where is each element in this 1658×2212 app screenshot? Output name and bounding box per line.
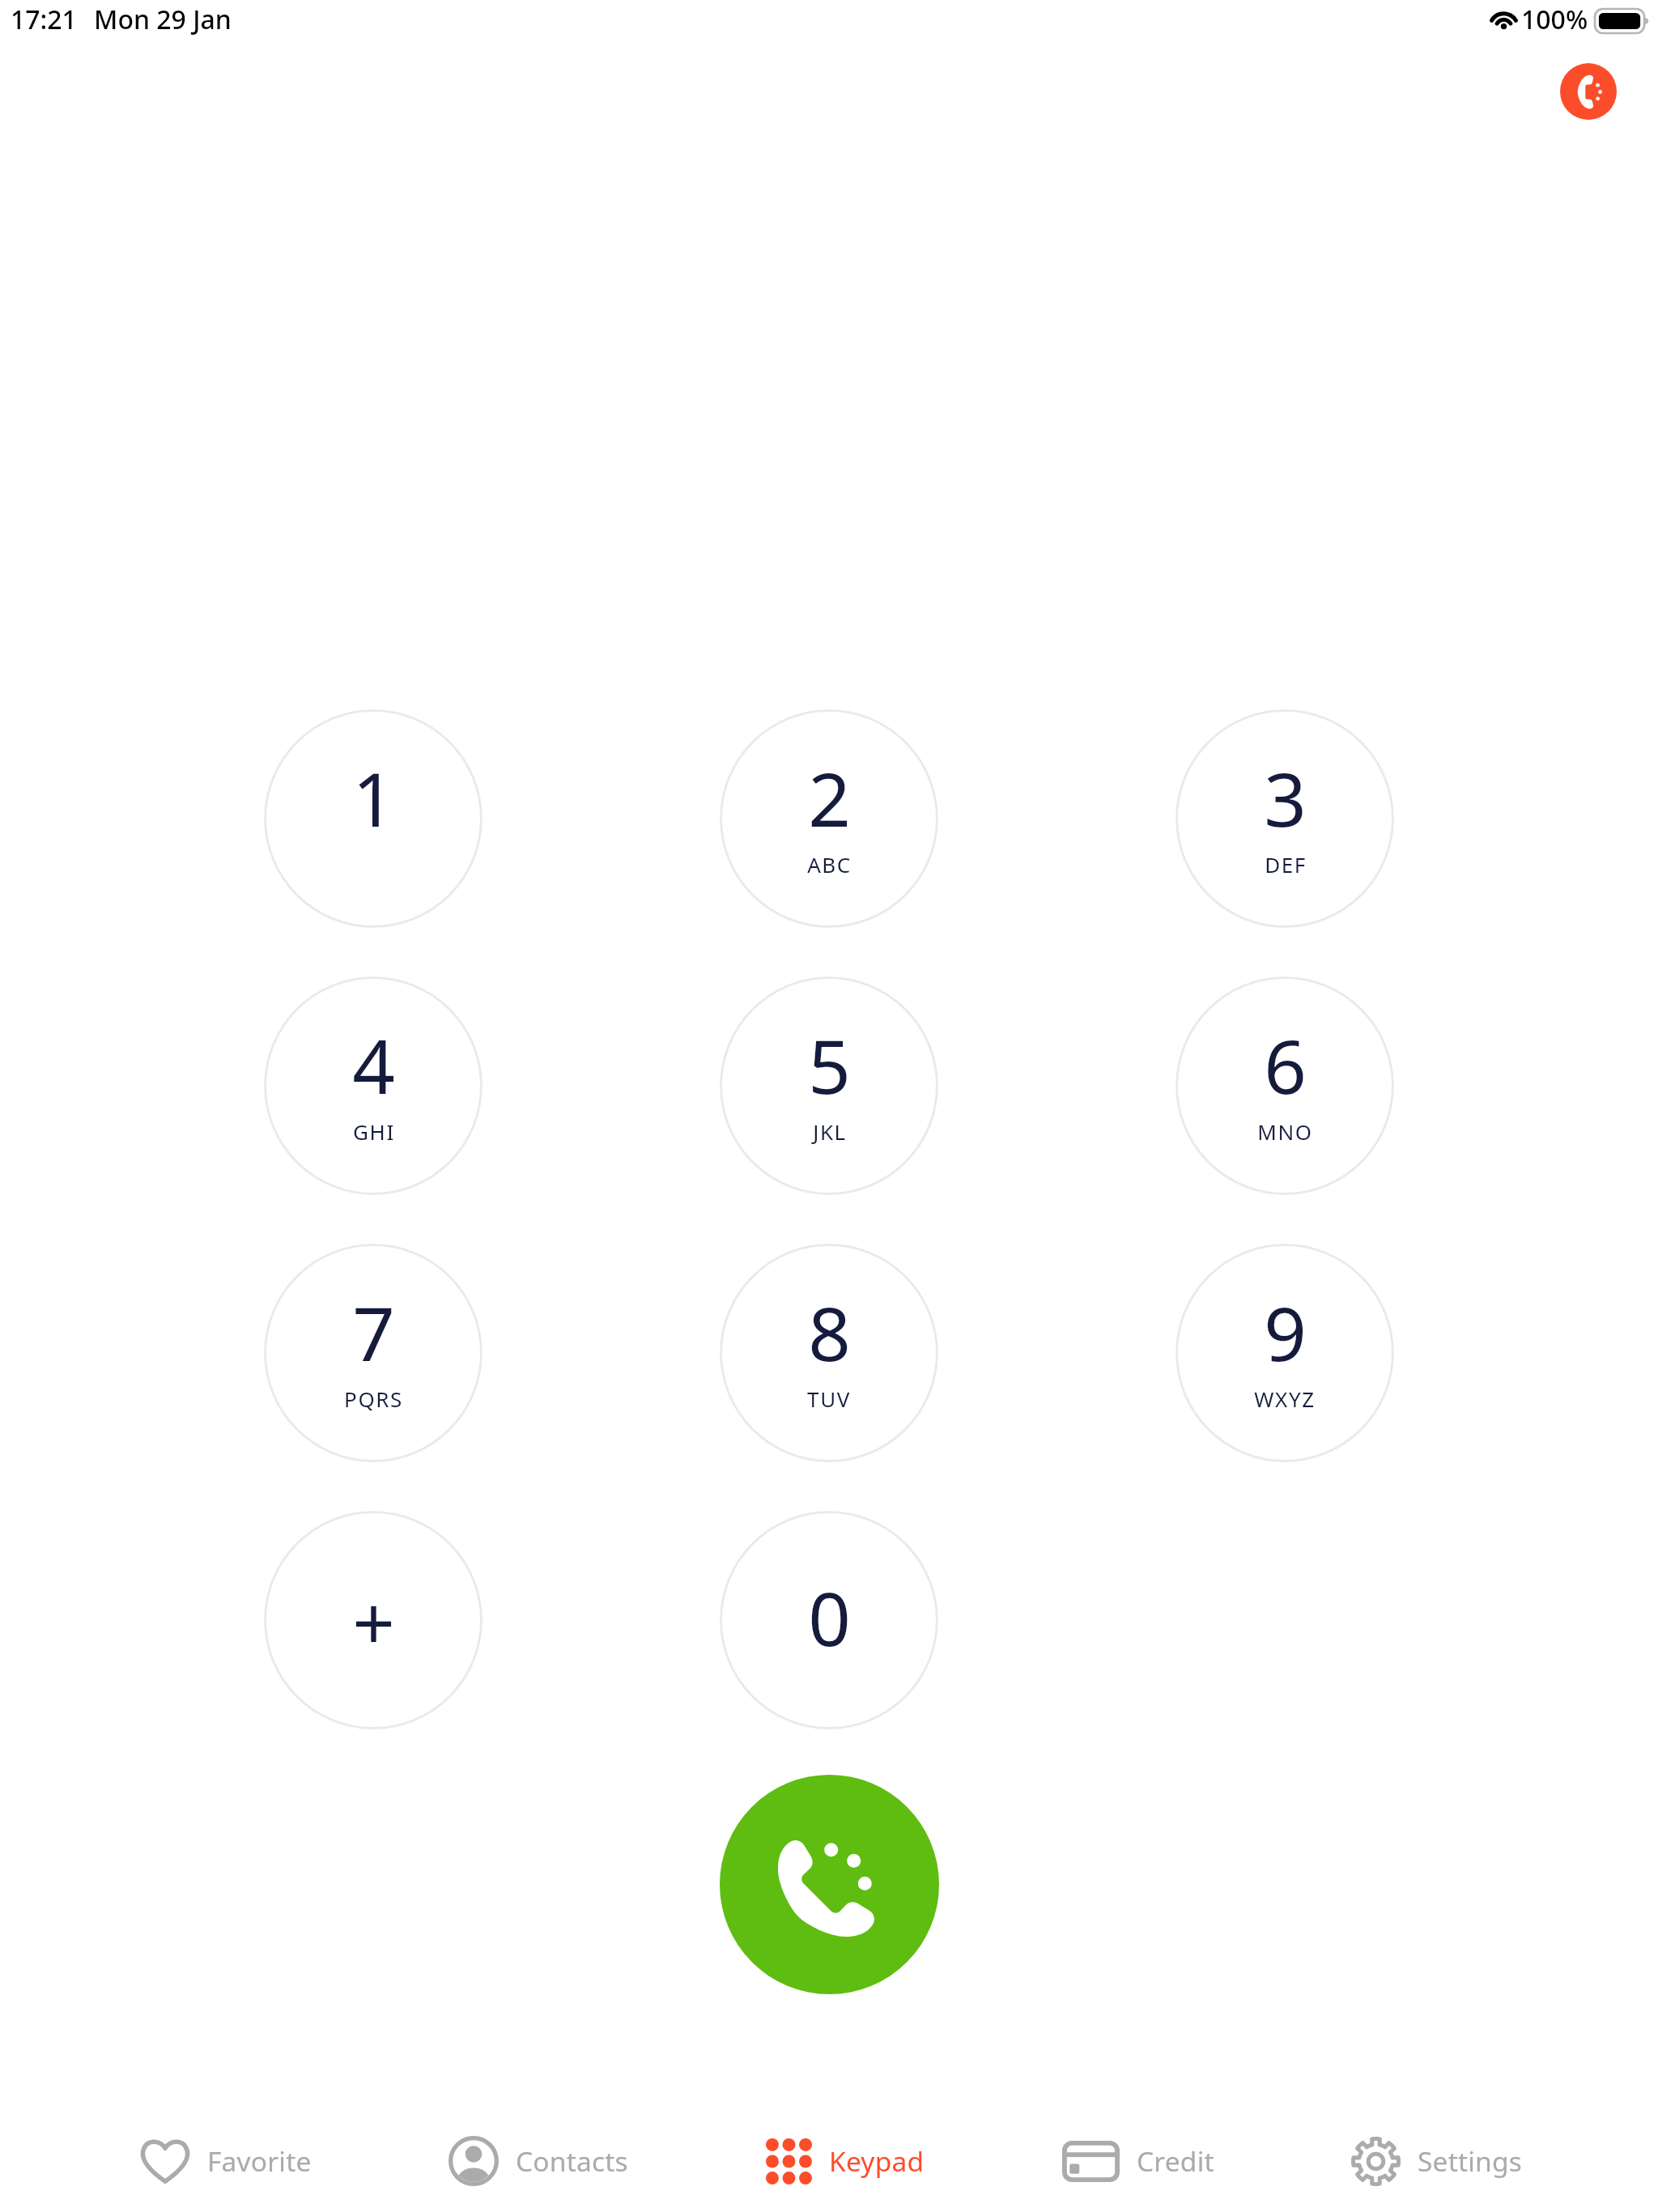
staticText: 100% (1521, 2, 1588, 37)
button[interactable]: + (264, 1511, 483, 1729)
staticText: 2 (808, 747, 851, 849)
button[interactable]: 0 (720, 1511, 938, 1729)
staticText: GHI (353, 1117, 395, 1146)
button[interactable]: 6 (1175, 976, 1394, 1195)
staticText: MNO (1257, 1117, 1313, 1146)
staticText: DEF (1265, 850, 1307, 878)
staticText: 5 (808, 1015, 851, 1116)
staticText: 7 (352, 1282, 395, 1383)
staticText: 17:21 (11, 2, 77, 37)
staticText: 0 (808, 1567, 851, 1668)
staticText: Favorite (207, 2142, 312, 2180)
staticText: Settings (1418, 2142, 1523, 2180)
staticText: 9 (1264, 1282, 1307, 1383)
staticText: 3 (1264, 747, 1307, 849)
button[interactable]: 7 (264, 1244, 483, 1462)
staticText: + (352, 1571, 395, 1672)
button[interactable]: Call (720, 1775, 939, 1994)
staticText: 1 (352, 747, 395, 849)
button[interactable]: Keypad (766, 2110, 925, 2212)
staticText: ABC (807, 850, 852, 878)
button[interactable]: Settings (1351, 2110, 1523, 2212)
button[interactable]: Credit (1062, 2110, 1214, 2212)
staticText: Credit (1137, 2142, 1214, 2180)
button[interactable]: 8 (720, 1244, 938, 1462)
staticText: TUV (807, 1385, 851, 1413)
button[interactable]: 9 (1175, 1244, 1394, 1462)
staticText: WXYZ (1254, 1385, 1316, 1413)
button[interactable]: Recent calls (1560, 63, 1617, 120)
button[interactable]: 1 (264, 709, 483, 928)
staticText: PQRS (344, 1385, 403, 1413)
button[interactable]: 5 (720, 976, 938, 1195)
staticText: Keypad (829, 2142, 925, 2180)
staticText: Contacts (516, 2142, 628, 2180)
staticText: JKL (813, 1117, 847, 1146)
staticText: 8 (808, 1282, 851, 1383)
button[interactable]: 4 (264, 976, 483, 1195)
button[interactable]: 2 (720, 709, 938, 928)
staticText: Mon 29 Jan (94, 2, 232, 37)
staticText: 6 (1264, 1015, 1307, 1116)
staticText: 4 (352, 1015, 395, 1116)
button[interactable]: Favorite (140, 2110, 312, 2212)
button[interactable]: 3 (1175, 709, 1394, 928)
button[interactable]: Contacts (449, 2110, 628, 2212)
